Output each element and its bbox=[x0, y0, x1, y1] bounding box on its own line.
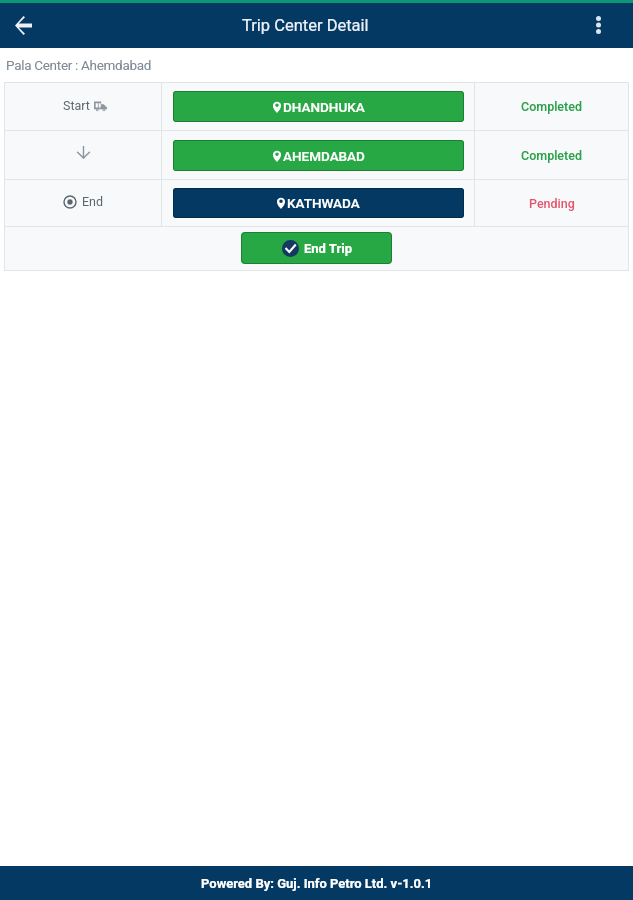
button[interactable]: KATHWADA bbox=[173, 188, 464, 218]
button[interactable]: Back bbox=[5, 8, 41, 44]
button[interactable]: More options bbox=[583, 10, 615, 42]
staticText: End bbox=[82, 194, 104, 209]
button[interactable]: AHEMDABAD bbox=[173, 140, 464, 171]
staticText: Powered By: Guj. Info Petro Ltd. v-1.0.1 bbox=[201, 876, 433, 891]
staticText: Trip Center Detail bbox=[242, 16, 369, 35]
staticText: Pending bbox=[529, 196, 575, 211]
staticText: AHEMDABAD bbox=[283, 148, 365, 164]
staticText: Start bbox=[63, 98, 90, 113]
staticText: Completed bbox=[521, 148, 582, 163]
staticText: DHANDHUKA bbox=[283, 99, 365, 115]
staticText: KATHWADA bbox=[287, 195, 360, 211]
staticText: Completed bbox=[521, 99, 582, 114]
button[interactable]: DHANDHUKA bbox=[173, 91, 464, 122]
button[interactable]: End Trip bbox=[241, 232, 392, 264]
staticText: Pala Center : Ahemdabad bbox=[6, 57, 152, 73]
staticText: End Trip bbox=[304, 241, 352, 256]
